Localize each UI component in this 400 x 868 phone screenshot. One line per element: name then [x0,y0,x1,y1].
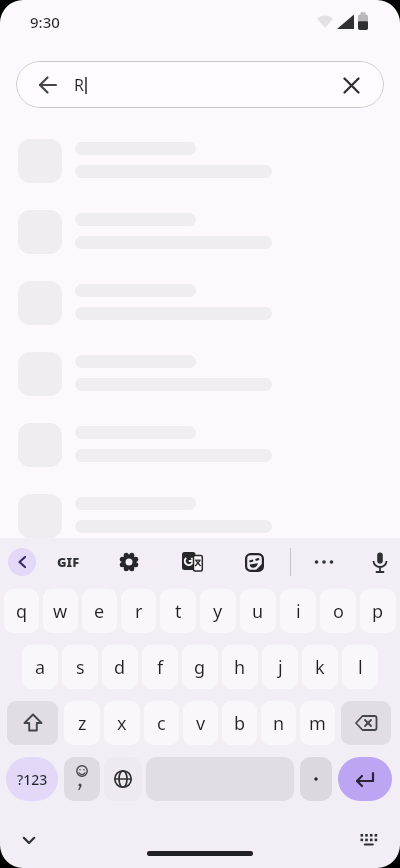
staticText: u [252,599,264,624]
button[interactable]: j [262,645,298,689]
button[interactable] [240,548,268,576]
staticText: w [53,599,68,624]
button[interactable]: s [62,645,98,689]
staticText: e [94,599,105,624]
button[interactable]: c [144,701,179,745]
button[interactable] [104,757,142,801]
staticText: 9:30 [30,12,60,32]
button[interactable]: v [183,701,218,745]
button[interactable] [0,139,400,210]
staticText: t [175,599,182,624]
button[interactable]: r [121,589,156,633]
staticText: b [234,711,246,736]
button[interactable]: R [16,61,384,108]
button[interactable] [7,701,58,745]
staticText: q [16,599,28,624]
staticText: f [157,655,164,680]
button[interactable]: y [200,589,236,633]
staticText: GIF [57,553,80,571]
button[interactable] [300,757,332,801]
staticText: ?123 [17,770,48,789]
staticText: l [358,655,363,680]
staticText: k [315,655,325,680]
button[interactable]: p [360,589,396,633]
staticText: i [296,599,301,624]
staticText: r [135,599,143,624]
button[interactable]: g [182,645,218,689]
button[interactable]: o [320,589,356,633]
staticText: g [194,655,206,680]
button[interactable]: e [82,589,117,633]
staticText: m [309,711,326,736]
button[interactable] [310,548,338,576]
staticText: c [157,711,166,736]
button[interactable] [366,548,394,576]
staticText: j [278,655,283,680]
staticText: p [372,599,384,624]
staticText: x [117,711,127,736]
button[interactable]: x [104,701,140,745]
button[interactable] [356,827,382,853]
button[interactable]: d [102,645,138,689]
button[interactable]: GIF [54,548,82,576]
button[interactable]: m [300,701,335,745]
button[interactable] [0,210,400,281]
staticText: s [76,655,85,680]
button[interactable] [0,423,400,494]
button[interactable] [338,757,392,801]
button[interactable] [64,757,100,801]
staticText: a [35,655,46,680]
button[interactable]: w [43,589,78,633]
button[interactable] [0,494,400,565]
button[interactable]: i [280,589,316,633]
staticText: h [234,655,246,680]
button[interactable]: t [160,589,196,633]
staticText: n [273,711,285,736]
staticText: d [114,655,126,680]
button[interactable]: l [342,645,378,689]
button[interactable]: a [22,645,58,689]
staticText: o [333,599,344,624]
button[interactable] [341,701,391,745]
button[interactable]: ?123 [6,757,58,801]
staticText: R [74,74,84,96]
button[interactable] [16,827,42,853]
staticText: y [213,599,223,624]
button[interactable] [0,281,400,352]
button[interactable]: n [261,701,296,745]
button[interactable]: z [64,701,100,745]
staticText: z [78,711,87,736]
button[interactable] [0,352,400,423]
button[interactable]: q [4,589,39,633]
button[interactable]: u [240,589,276,633]
button[interactable] [115,548,143,576]
button[interactable] [30,67,66,103]
button[interactable] [8,548,36,576]
button[interactable] [333,67,369,103]
staticText: v [196,711,206,736]
button[interactable] [178,548,206,576]
button[interactable]: f [142,645,178,689]
button[interactable]: h [222,645,258,689]
button[interactable]: b [222,701,257,745]
button[interactable]: k [302,645,338,689]
